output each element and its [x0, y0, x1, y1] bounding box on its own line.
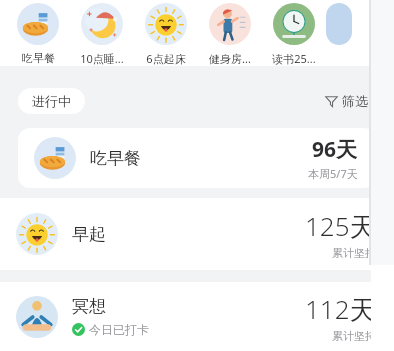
staticText: 筛选 [342, 93, 368, 109]
button[interactable]: 健身房... [198, 0, 262, 66]
staticText: 冥想 [72, 296, 106, 317]
staticText: 96天 [312, 135, 358, 164]
button[interactable]: 吃早餐 [18, 128, 376, 188]
staticText: 吃早餐 [90, 148, 141, 169]
button[interactable]: 进行中 [18, 88, 85, 114]
button[interactable]: 6点起床 [134, 0, 198, 66]
staticText: 健身房... [209, 51, 251, 66]
staticText: 累计坚持 [332, 329, 376, 343]
staticText: 125天 [305, 208, 376, 244]
button[interactable]: 10点睡... [70, 0, 134, 66]
staticText: 10点睡... [80, 51, 124, 66]
staticText: 进行中 [32, 93, 71, 109]
button[interactable]: 冥想 [0, 282, 394, 351]
staticText: 本周5/7天 [308, 166, 358, 181]
staticText: 早起 [72, 224, 106, 245]
button[interactable]: 吃早餐 [6, 0, 70, 65]
staticText: 今日已打卡 [89, 322, 149, 337]
staticText: 112天 [305, 291, 376, 327]
button[interactable]: 筛选 [321, 89, 372, 113]
staticText: 读书25... [272, 51, 316, 66]
button[interactable]: 读书25... [262, 0, 326, 66]
staticText: 吃早餐 [22, 51, 55, 65]
button[interactable]: 早起 [0, 198, 394, 270]
staticText: 6点起床 [146, 51, 186, 66]
staticText: 累计坚持 [332, 246, 376, 260]
